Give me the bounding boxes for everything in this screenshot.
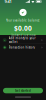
staticText: Updated just now [10, 33, 35, 37]
staticText: Add money to your wallet [9, 37, 36, 44]
button[interactable]: Transaction history [0, 44, 46, 51]
staticText: Get started [15, 89, 31, 92]
staticText: $0.00 [14, 24, 32, 33]
staticText: 9:41 [5, 0, 12, 4]
staticText: Transaction history [9, 46, 35, 49]
button[interactable]: Add money to your wallet [0, 37, 46, 44]
staticText: Your available balance [6, 19, 40, 22]
button[interactable]: Get started [3, 88, 43, 93]
